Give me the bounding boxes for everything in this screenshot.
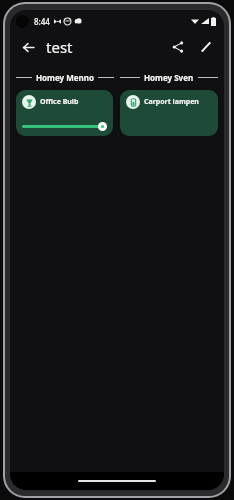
button[interactable]: Back <box>16 35 40 59</box>
staticText: Carport lampen <box>144 97 199 107</box>
staticText: test <box>46 37 73 57</box>
button[interactable]: Office Bulb <box>16 90 113 136</box>
button[interactable]: Share <box>166 35 190 59</box>
staticText: Office Bulb <box>40 97 79 107</box>
button[interactable]: Edit <box>194 35 218 59</box>
staticText: Homey Sven <box>144 72 194 83</box>
staticText: Homey Menno <box>36 72 94 83</box>
staticText: 8:44 <box>34 16 50 27</box>
button[interactable]: Brightness slider <box>22 121 107 131</box>
button[interactable]: Carport lampen <box>120 90 218 136</box>
